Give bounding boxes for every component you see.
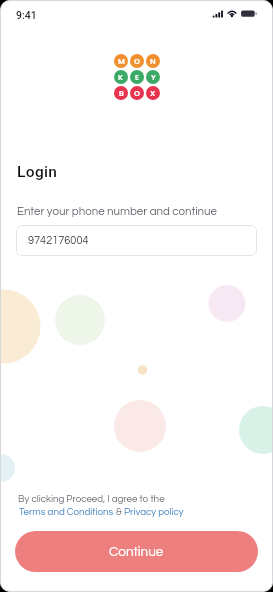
staticText: 9:41	[16, 9, 37, 21]
staticText: Enter your phone number and continue	[17, 206, 217, 218]
staticText: M	[118, 56, 125, 67]
button[interactable]: 9742176004	[16, 225, 257, 256]
staticText: X	[150, 88, 156, 99]
staticText: K	[118, 72, 124, 83]
button[interactable]: Continue	[15, 531, 258, 572]
staticText: O	[134, 56, 140, 67]
staticText: B	[119, 88, 124, 99]
staticText: N	[150, 56, 156, 67]
button[interactable]: Terms and Conditions	[19, 507, 114, 517]
staticText: O	[134, 88, 140, 99]
staticText: Continue	[109, 545, 164, 559]
staticText: &	[114, 507, 124, 517]
staticText: E	[135, 72, 140, 83]
button[interactable]: Privacy policy	[124, 507, 184, 517]
staticText: Y	[151, 72, 156, 83]
staticText: 9742176004	[28, 235, 89, 246]
staticText: By clicking Proceed, I agree to the	[18, 494, 165, 504]
staticText: Login	[17, 163, 58, 181]
